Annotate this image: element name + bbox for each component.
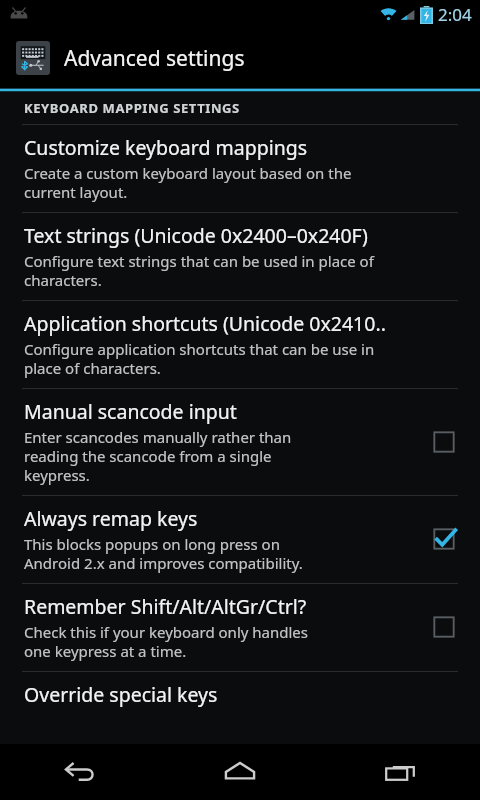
button[interactable]: Remember Shift/Alt/AltGr/Ctrl?: [0, 584, 480, 672]
staticText: Application shortcuts (Unicode 0x2410..: [24, 310, 386, 337]
button[interactable]: Override special keys: [0, 672, 480, 718]
button[interactable]: Unchecked: [422, 605, 466, 649]
button[interactable]: Application shortcuts (Unicode 0x2410..: [0, 301, 480, 389]
staticText: Configure application shortcuts that can…: [24, 339, 375, 378]
button[interactable]: Unchecked: [422, 420, 466, 464]
button[interactable]: Always remap keys: [0, 496, 480, 584]
staticText: 2:04: [438, 3, 472, 26]
staticText: This blocks popups on long press on Andr…: [24, 534, 303, 573]
button[interactable]: Advanced settings: [0, 28, 480, 88]
staticText: Remember Shift/Alt/AltGr/Ctrl?: [24, 593, 307, 620]
button[interactable]: Home: [160, 744, 320, 800]
button[interactable]: Checked: [422, 517, 466, 561]
staticText: Text strings (Unicode 0x2400–0x240F): [24, 222, 368, 249]
button[interactable]: Text strings (Unicode 0x2400–0x240F): [0, 213, 480, 301]
staticText: Always remap keys: [24, 505, 198, 532]
staticText: Advanced settings: [64, 44, 245, 73]
button[interactable]: Back: [0, 744, 160, 800]
button[interactable]: Recent apps: [320, 744, 480, 800]
staticText: Manual scancode input: [24, 398, 237, 425]
staticText: Override special keys: [24, 681, 218, 708]
staticText: KEYBOARD MAPPING SETTINGS: [24, 99, 240, 117]
staticText: Enter scancodes manually rather than rea…: [24, 427, 292, 485]
staticText: Customize keyboard mappings: [24, 134, 308, 161]
button[interactable]: Customize keyboard mappings: [0, 125, 480, 213]
staticText: Create a custom keyboard layout based on…: [24, 163, 352, 202]
staticText: Check this if your keyboard only handles…: [24, 622, 308, 661]
staticText: Configure text strings that can be used …: [24, 251, 374, 290]
button[interactable]: Manual scancode input: [0, 389, 480, 496]
